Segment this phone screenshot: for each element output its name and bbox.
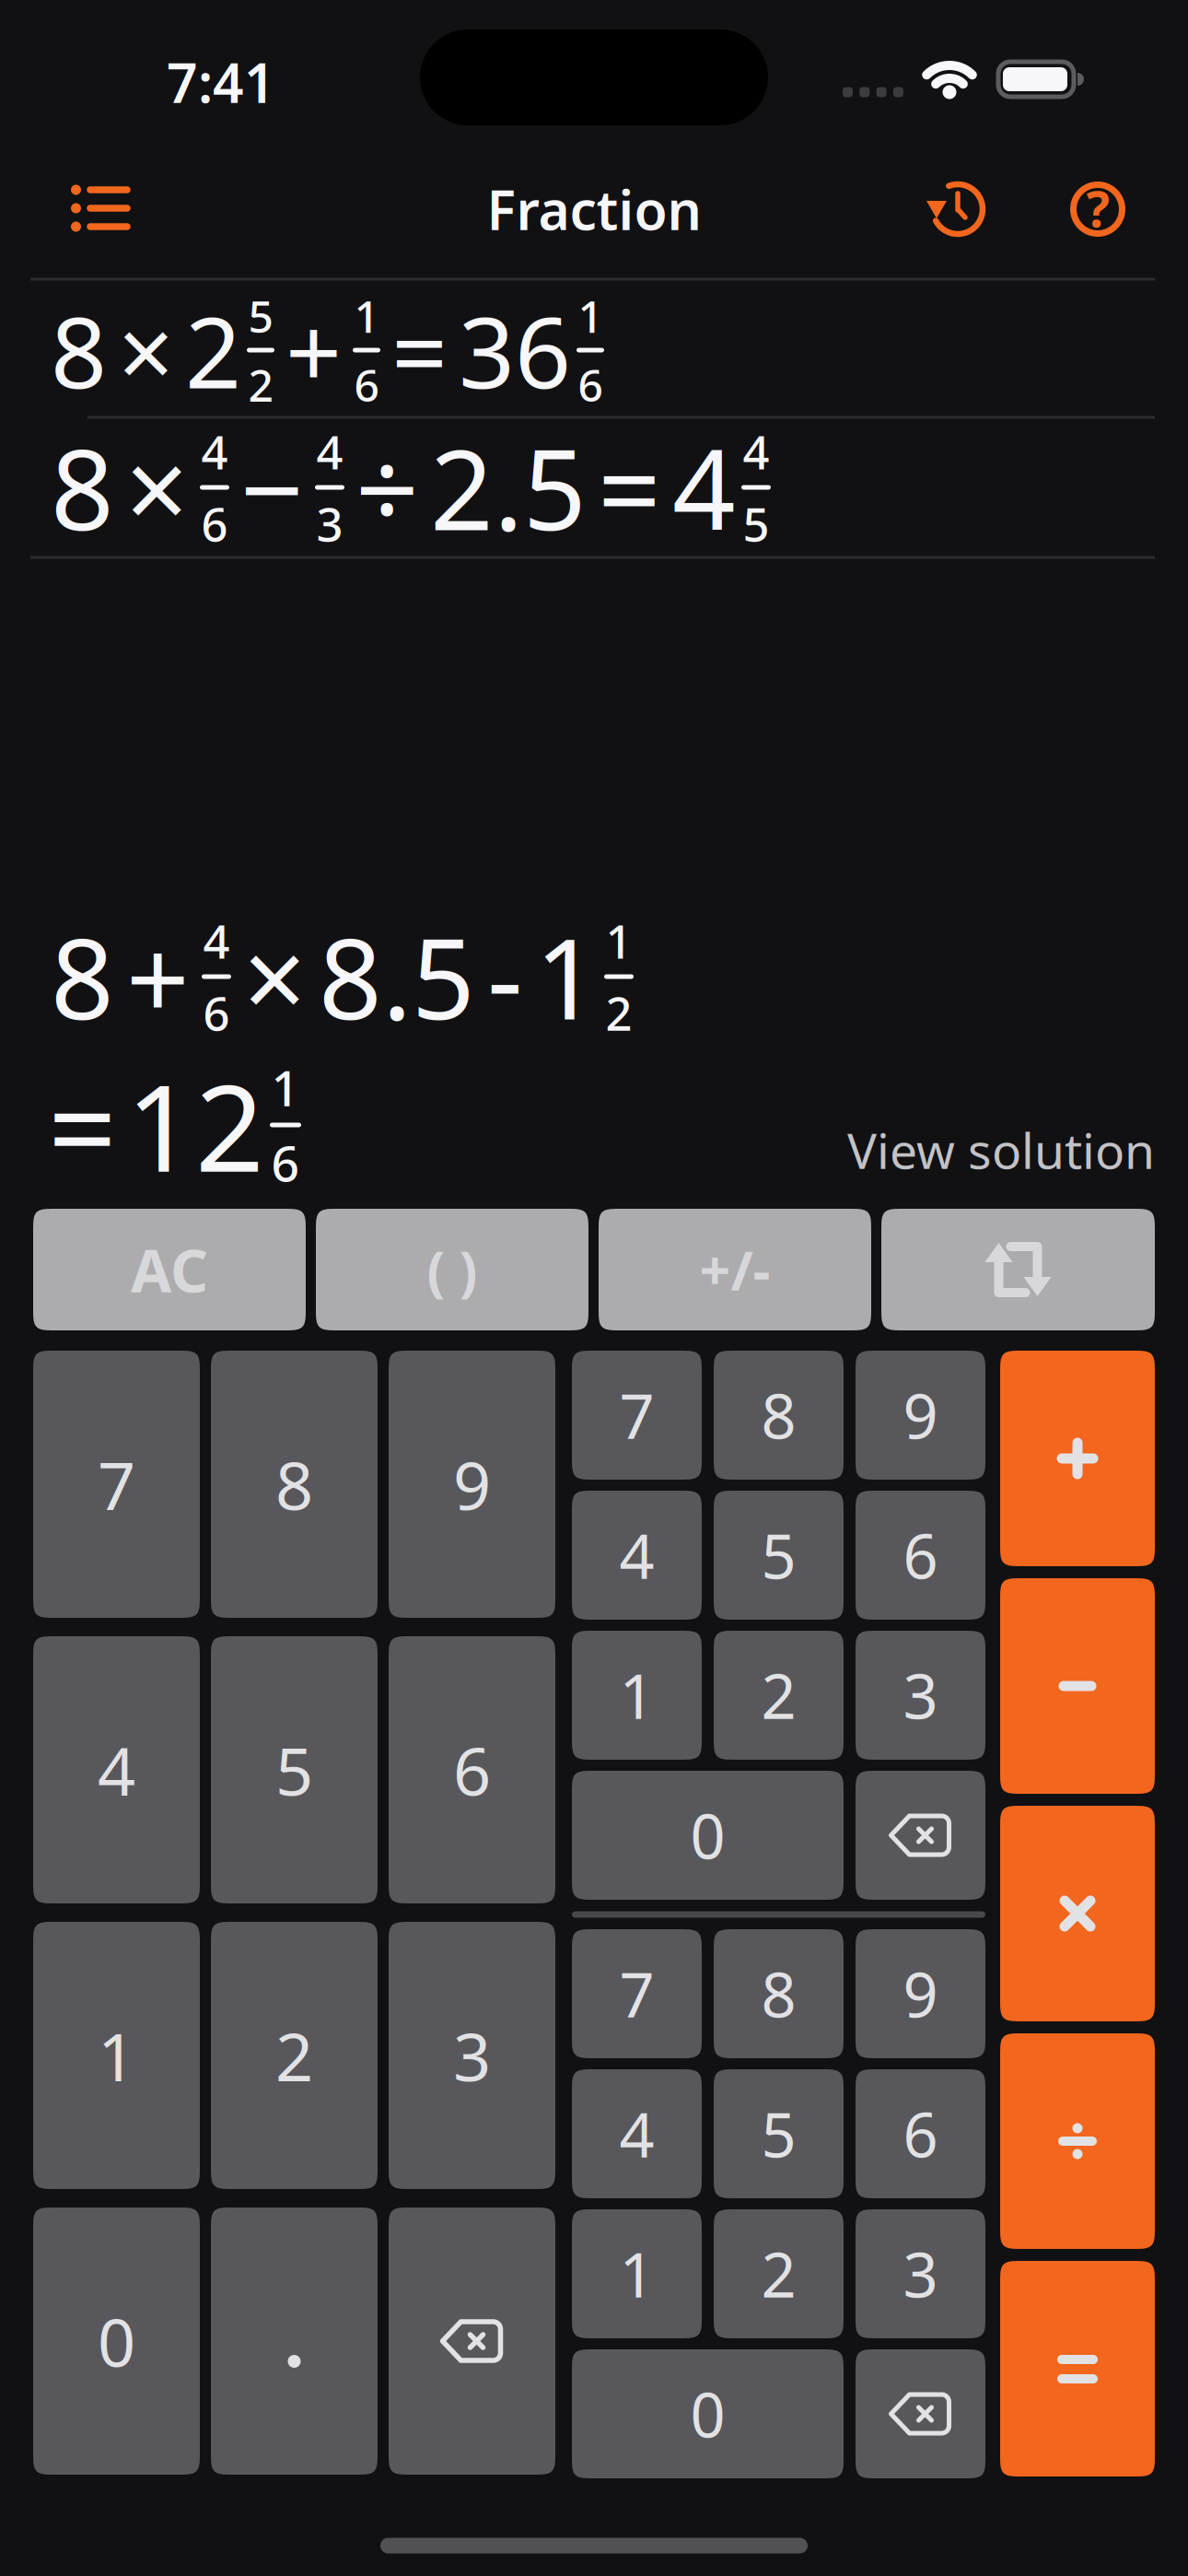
staticText: 8 bbox=[51, 285, 107, 415]
staticText: 6 bbox=[201, 492, 228, 554]
staticText: − bbox=[240, 414, 304, 561]
staticText: 3 bbox=[453, 2011, 491, 2099]
button[interactable]: 7 bbox=[572, 1351, 702, 1480]
staticText: 8 bbox=[761, 1953, 796, 2034]
button[interactable]: 8 bbox=[714, 1351, 844, 1480]
button[interactable]: Delete bbox=[856, 1771, 985, 1900]
staticText: 2 bbox=[761, 1654, 796, 1736]
button[interactable]: Multiply bbox=[1000, 1806, 1155, 2021]
button[interactable]: View solution bbox=[847, 1117, 1155, 1182]
staticText: 6 bbox=[271, 1130, 300, 1195]
staticText: 4 bbox=[316, 420, 343, 482]
button[interactable]: 1 bbox=[33, 1922, 200, 2189]
button[interactable]: 0 bbox=[572, 2349, 844, 2478]
button[interactable]: 4 bbox=[572, 2069, 702, 2198]
button[interactable]: 6 bbox=[856, 1491, 985, 1620]
staticText: 1 bbox=[271, 1055, 300, 1120]
staticText: 1 bbox=[606, 910, 632, 972]
button[interactable]: 9 bbox=[856, 1351, 985, 1480]
staticText: × bbox=[243, 903, 307, 1050]
button[interactable]: History bbox=[927, 178, 990, 240]
staticText: 5 bbox=[248, 286, 273, 345]
staticText: 2 bbox=[248, 355, 273, 414]
button[interactable]: 8 bbox=[714, 1929, 844, 2058]
button[interactable]: 6 bbox=[389, 1636, 555, 1903]
staticText: +/- bbox=[699, 1234, 770, 1305]
button[interactable]: 0 bbox=[33, 2207, 200, 2475]
staticText: Fraction bbox=[487, 173, 701, 245]
staticText: 2 bbox=[761, 2233, 796, 2315]
button[interactable]: Delete bbox=[856, 2349, 985, 2478]
button[interactable]: 2 bbox=[714, 2209, 844, 2338]
staticText: 7 bbox=[619, 1953, 654, 2034]
staticText: ( ) bbox=[427, 1234, 478, 1305]
staticText: 7:41 bbox=[167, 46, 275, 118]
button[interactable]: Equals bbox=[1000, 2261, 1155, 2476]
button[interactable]: 9 bbox=[856, 1929, 985, 2058]
button[interactable]: Delete bbox=[389, 2207, 555, 2475]
staticText: ÷ bbox=[355, 414, 419, 561]
staticText: 4 bbox=[203, 910, 230, 972]
button[interactable]: 7 bbox=[572, 1929, 702, 2058]
staticText: 5 bbox=[761, 1514, 796, 1596]
staticText: 1 bbox=[354, 286, 379, 345]
button[interactable]: 3 bbox=[856, 2209, 985, 2338]
staticText: 3 bbox=[903, 2233, 938, 2315]
button[interactable]: 1 bbox=[572, 1631, 702, 1760]
staticText: 2 bbox=[606, 982, 632, 1044]
staticText: 4 bbox=[743, 420, 769, 482]
button[interactable]: 6 bbox=[856, 2069, 985, 2198]
button[interactable]: Divide bbox=[1000, 2033, 1155, 2249]
staticText: 6 bbox=[203, 982, 230, 1044]
button[interactable]: 2 bbox=[714, 1631, 844, 1760]
staticText: = bbox=[48, 1045, 117, 1205]
button[interactable]: 4 bbox=[572, 1491, 702, 1620]
staticText: 1 bbox=[578, 286, 603, 345]
button[interactable]: Decimal point bbox=[211, 2207, 378, 2475]
staticText: 2.5 bbox=[430, 414, 587, 561]
staticText: + bbox=[126, 903, 190, 1050]
staticText: 1 bbox=[535, 903, 599, 1050]
staticText: 2 bbox=[185, 285, 241, 415]
staticText: 5 bbox=[275, 1726, 313, 1814]
staticText: 5 bbox=[761, 2093, 796, 2174]
staticText: 8 bbox=[761, 1374, 796, 1456]
staticText: 9 bbox=[453, 1440, 491, 1528]
staticText: 0 bbox=[690, 1794, 725, 1876]
button[interactable]: 5 bbox=[714, 1491, 844, 1620]
button[interactable]: All clear bbox=[33, 1209, 306, 1330]
button[interactable]: 8 bbox=[211, 1351, 378, 1618]
button[interactable]: Subtract bbox=[1000, 1578, 1155, 1794]
staticText: 8.5 bbox=[319, 903, 475, 1050]
button[interactable]: 9 bbox=[389, 1351, 555, 1618]
staticText: 7 bbox=[98, 1440, 135, 1528]
staticText: 8 bbox=[51, 903, 114, 1050]
staticText: 3 bbox=[903, 1654, 938, 1736]
staticText: 8 bbox=[275, 1440, 313, 1528]
button[interactable]: 5 bbox=[211, 1636, 378, 1903]
button[interactable]: 0 bbox=[572, 1771, 844, 1900]
staticText: AC bbox=[131, 1230, 208, 1309]
staticText: 6 bbox=[354, 355, 379, 414]
button[interactable]: 4 bbox=[33, 1636, 200, 1903]
staticText: 6 bbox=[578, 355, 603, 414]
button[interactable]: Add bbox=[1000, 1351, 1155, 1566]
button[interactable]: Menu bbox=[71, 187, 130, 229]
button[interactable]: 7 bbox=[33, 1351, 200, 1618]
staticText: 8 bbox=[51, 414, 114, 561]
button[interactable]: 1 bbox=[572, 2209, 702, 2338]
staticText: 2 bbox=[275, 2011, 313, 2099]
button[interactable]: Swap bbox=[881, 1209, 1155, 1330]
button[interactable]: 2 bbox=[211, 1922, 378, 2189]
button[interactable]: Help bbox=[1070, 181, 1125, 237]
button[interactable]: Plus minus bbox=[599, 1209, 871, 1330]
button[interactable]: Parentheses bbox=[316, 1209, 588, 1330]
staticText: 9 bbox=[903, 1374, 938, 1456]
button[interactable]: 5 bbox=[714, 2069, 844, 2198]
staticText: 1 bbox=[98, 2011, 135, 2099]
staticText: × bbox=[118, 285, 174, 415]
button[interactable]: 3 bbox=[389, 1922, 555, 2189]
staticText: 4 bbox=[98, 1726, 135, 1814]
staticText: 4 bbox=[201, 420, 228, 482]
button[interactable]: 3 bbox=[856, 1631, 985, 1760]
